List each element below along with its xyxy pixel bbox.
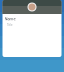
staticText: Name	[4, 16, 15, 21]
staticText: Title	[7, 23, 13, 27]
